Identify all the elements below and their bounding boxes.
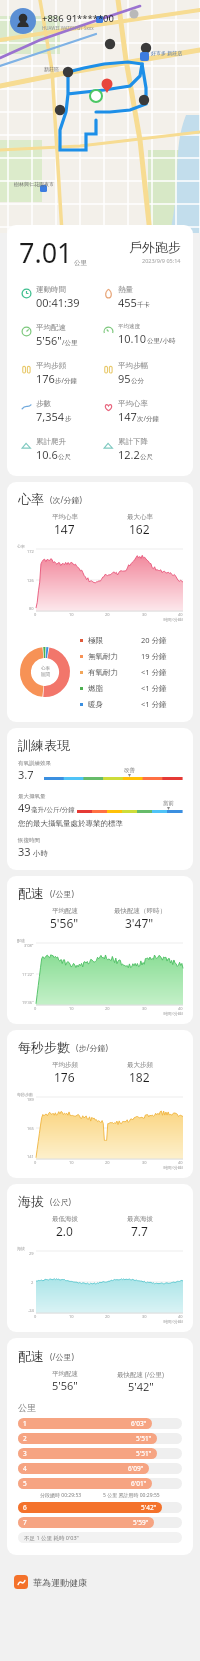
- button[interactable]: 訓練表現: [7, 728, 193, 870]
- staticText: 平均心率: [52, 513, 78, 521]
- staticText: 11'22": [22, 972, 34, 977]
- staticText: HUAWEI WATCH GT Sxxx: [42, 25, 94, 31]
- button[interactable]: 4: [18, 1463, 182, 1474]
- button[interactable]: 7.01: [7, 225, 193, 476]
- staticText: 累計爬升: [36, 437, 66, 446]
- staticText: 平均速度: [118, 323, 140, 330]
- staticText: 步/分鐘: [55, 376, 77, 385]
- staticText: 改善: [124, 767, 135, 774]
- staticText: 平均配速: [36, 323, 66, 332]
- staticText: 每秒步數: [17, 1092, 33, 1097]
- staticText: 6: [23, 1503, 27, 1512]
- staticText: 5'42": [128, 1379, 154, 1394]
- button[interactable]: 6: [18, 1502, 182, 1513]
- button[interactable]: 7: [18, 1517, 182, 1528]
- button[interactable]: 1: [18, 1418, 182, 1429]
- staticText: 141: [27, 1154, 34, 1159]
- staticText: <1 分鐘: [141, 699, 167, 709]
- staticText: 恢復時間: [18, 837, 40, 844]
- staticText: 新莊區: [44, 66, 59, 72]
- staticText: /公里: [62, 338, 78, 347]
- button[interactable]: 極限: [80, 632, 181, 648]
- staticText: 無氧耐力: [88, 652, 118, 661]
- button[interactable]: 燃脂: [80, 680, 181, 696]
- staticText: 19 分鐘: [141, 651, 167, 661]
- staticText: 49: [18, 800, 31, 815]
- staticText: 時間 (分鐘): [7, 617, 183, 622]
- button[interactable]: 平均步頻: [21, 361, 103, 386]
- button[interactable]: 運動時間: [21, 285, 103, 310]
- staticText: 小時: [31, 848, 48, 858]
- staticText: 海拔: [18, 1193, 44, 1209]
- staticText: 2023/9/9 05:14: [142, 257, 181, 264]
- other: 華為運動健康: [14, 1575, 28, 1589]
- staticText: 3: [23, 1449, 27, 1458]
- staticText: 公分: [131, 377, 144, 385]
- staticText: 時間 (分鐘): [7, 1011, 183, 1016]
- button[interactable]: 有氧耐力: [80, 664, 181, 680]
- staticText: +886 91*****00: [42, 12, 114, 25]
- button[interactable]: 平均步幅: [103, 361, 185, 386]
- staticText: 最快配速（即時）: [114, 907, 166, 915]
- staticText: 33: [18, 844, 31, 859]
- staticText: 126: [27, 578, 34, 583]
- staticText: 5'42": [141, 1503, 157, 1512]
- staticText: 7.7: [131, 1223, 148, 1239]
- staticText: 海拔: [17, 1246, 25, 1251]
- staticText: 累計下降: [118, 437, 148, 446]
- staticText: 3'47": [125, 915, 154, 931]
- staticText: 燃脂: [88, 684, 103, 693]
- button[interactable]: Route map: [0, 0, 200, 233]
- staticText: (/公里): [50, 1351, 74, 1362]
- button[interactable]: 配速: [7, 1338, 193, 1555]
- staticText: 公尺: [140, 453, 153, 461]
- staticText: 10: [69, 1006, 74, 1011]
- staticText: 最大步頻: [127, 1061, 153, 1069]
- button[interactable]: 5: [18, 1478, 182, 1489]
- button[interactable]: 平均心率: [103, 399, 185, 424]
- staticText: 2.0: [56, 1223, 73, 1239]
- staticText: 7,354: [36, 409, 65, 424]
- staticText: 80: [29, 606, 34, 611]
- staticText: 1: [23, 1419, 27, 1428]
- button[interactable]: 華為運動健康: [14, 1575, 200, 1589]
- staticText: 步: [65, 415, 72, 423]
- staticText: 20: [105, 1314, 110, 1319]
- staticText: 平均配速: [52, 907, 78, 915]
- button[interactable]: 平均配速: [21, 323, 103, 348]
- staticText: 10.6: [36, 447, 58, 462]
- button[interactable]: 暖身: [80, 696, 181, 712]
- staticText: 95: [118, 371, 131, 386]
- button[interactable]: 無氧耐力: [80, 648, 181, 664]
- button[interactable]: 平均速度: [103, 323, 185, 346]
- button[interactable]: 步數: [21, 399, 103, 424]
- staticText: 時間 (分鐘): [7, 1165, 183, 1170]
- staticText: 公尺: [58, 453, 71, 461]
- button[interactable]: 3: [18, 1448, 182, 1459]
- staticText: 29: [29, 1251, 34, 1256]
- staticText: 毫升/公斤/分鐘: [31, 805, 75, 814]
- button[interactable]: 2: [18, 1433, 182, 1444]
- staticText: 最快配速 (/公里): [117, 1370, 165, 1379]
- button[interactable]: 每秒步數: [7, 1030, 193, 1178]
- staticText: 7: [23, 1518, 27, 1527]
- staticText: 3'08": [24, 943, 34, 948]
- button[interactable]: 累計爬升: [21, 437, 103, 462]
- staticText: 最低海拔: [52, 1215, 78, 1223]
- staticText: 心率: [18, 491, 44, 507]
- staticText: 30: [142, 1006, 147, 1011]
- staticText: 公里: [74, 259, 87, 267]
- button[interactable]: 心率: [7, 482, 193, 722]
- staticText: 5: [23, 1479, 27, 1488]
- staticText: <1 分鐘: [141, 667, 167, 677]
- button[interactable]: 累計下降: [103, 437, 185, 462]
- button[interactable]: 海拔: [7, 1184, 193, 1332]
- staticText: 00:41:39: [36, 295, 80, 310]
- staticText: 當前: [163, 800, 174, 807]
- button[interactable]: 熱量: [103, 285, 185, 310]
- button[interactable]: 配速: [7, 876, 193, 1024]
- staticText: 0: [34, 1006, 37, 1011]
- staticText: 0: [34, 612, 37, 617]
- staticText: 30: [142, 612, 147, 617]
- staticText: 平均心率: [118, 399, 148, 408]
